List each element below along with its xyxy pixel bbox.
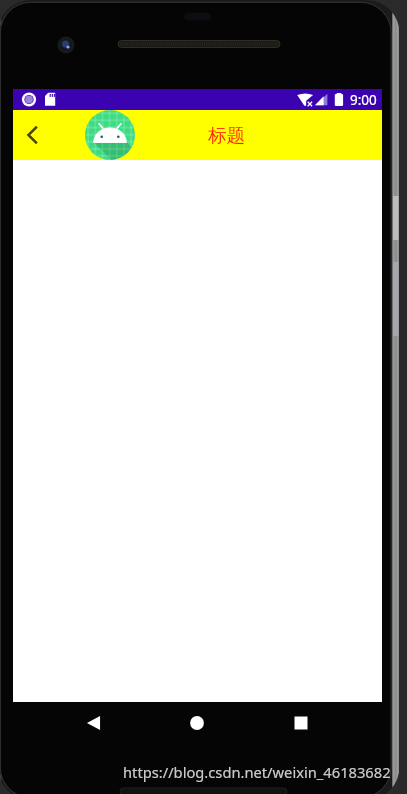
staticText: 9:00 (350, 91, 377, 109)
button[interactable]: Recent apps (281, 703, 321, 743)
button[interactable]: Home (177, 703, 217, 743)
staticText: https://blog.csdn.net/weixin_46183682 (123, 762, 391, 782)
button[interactable]: App icon (85, 110, 135, 160)
button[interactable]: Back (14, 114, 56, 156)
staticText: 标题 (208, 124, 245, 147)
button[interactable]: Navigate back (74, 703, 114, 743)
